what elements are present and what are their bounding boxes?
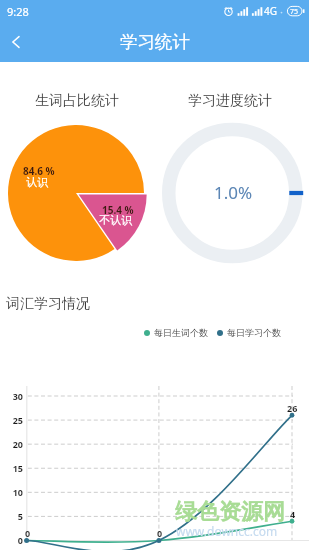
staticText: 生词占比统计: [35, 92, 119, 110]
staticText: 绿色资源网: [175, 498, 285, 526]
staticText: 25: [0, 414, 23, 426]
staticText: 不认识: [99, 213, 132, 227]
staticText: 0: [157, 527, 163, 539]
staticText: 学习统计: [120, 31, 190, 53]
staticText: 9:28: [7, 4, 29, 19]
staticText: 1.0%: [214, 181, 253, 204]
staticText: 30: [0, 390, 23, 402]
staticText: 4: [290, 508, 296, 520]
staticText: 15.4 %: [102, 203, 134, 217]
button[interactable]: Back: [0, 24, 31, 60]
staticText: 学习进度统计: [188, 92, 272, 110]
staticText: 4G: [264, 4, 277, 18]
staticText: 0: [0, 534, 23, 546]
staticText: 20: [0, 438, 23, 450]
staticText: 10: [0, 486, 23, 498]
staticText: 词汇学习情况: [6, 295, 90, 313]
staticText: 每日生词个数: [154, 327, 208, 338]
staticText: 认识: [26, 175, 48, 189]
staticText: 5: [0, 510, 23, 522]
staticText: 84.6 %: [23, 164, 55, 178]
staticText: www.downcc.com: [176, 523, 278, 539]
staticText: 15: [0, 462, 23, 474]
staticText: 每日学习个数: [227, 327, 281, 338]
staticText: 75: [290, 7, 299, 17]
staticText: 0: [25, 527, 31, 539]
staticText: 26: [287, 402, 298, 414]
